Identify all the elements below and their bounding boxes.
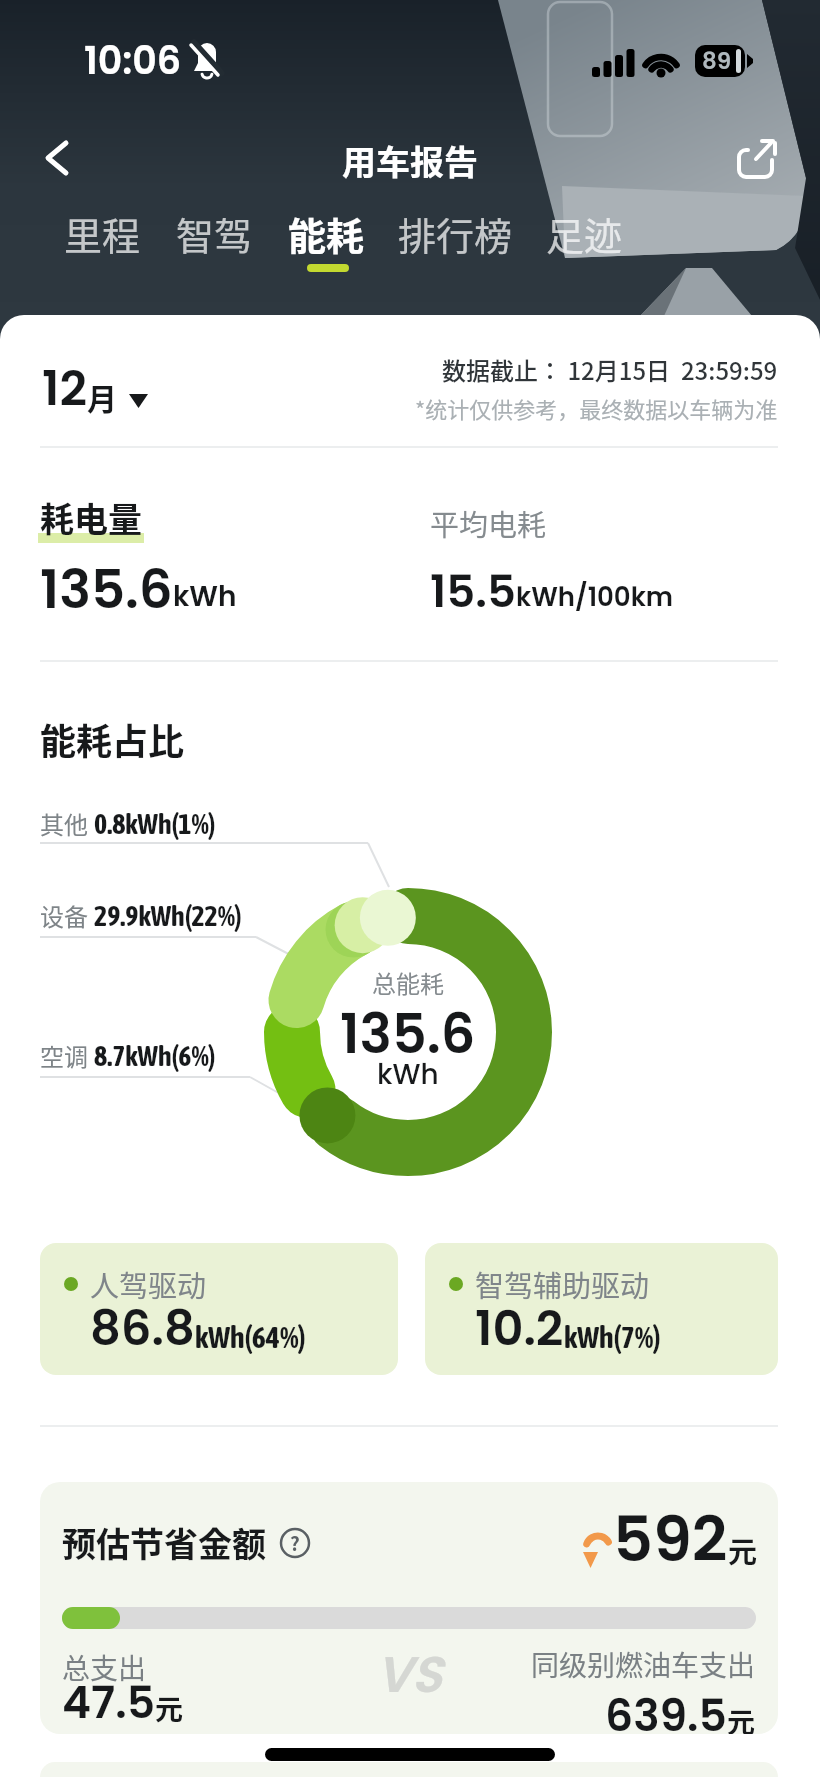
staticText: 元 bbox=[727, 1701, 756, 1734]
staticText: 智驾辅助驱动 bbox=[475, 1263, 650, 1305]
button[interactable]: 能耗 bbox=[288, 206, 365, 261]
staticText: 排行榜 bbox=[398, 206, 513, 261]
staticText: kWh bbox=[173, 577, 237, 616]
staticText: 里程 bbox=[64, 206, 141, 261]
staticText: 135.6 bbox=[40, 552, 173, 626]
staticText: 元 bbox=[728, 1529, 758, 1571]
button[interactable] bbox=[36, 132, 84, 180]
staticText: 空调 bbox=[40, 1038, 88, 1073]
staticText: 47.5 bbox=[62, 1672, 155, 1734]
staticText: *统计仅供参考，最终数据以车辆为准 bbox=[415, 392, 778, 424]
button[interactable]: 智驾辅助驱动 bbox=[425, 1243, 778, 1375]
staticText: 人驾驱动 bbox=[90, 1263, 207, 1305]
staticText: 元 bbox=[155, 1688, 184, 1729]
staticText: 耗电量 bbox=[40, 493, 142, 542]
staticText: 10.2 bbox=[475, 1295, 564, 1362]
button[interactable]: 排行榜 bbox=[398, 206, 513, 261]
button[interactable]: 里程 bbox=[64, 206, 141, 261]
staticText: 预估节省金额 bbox=[62, 1518, 266, 1567]
staticText: 135.6 bbox=[340, 996, 476, 1072]
staticText: VS bbox=[376, 1640, 442, 1710]
staticText: 总能耗 bbox=[372, 965, 444, 1000]
staticText: 平均电耗 bbox=[430, 502, 547, 544]
button[interactable]: 足迹 bbox=[546, 206, 623, 261]
staticText: 能耗占比 bbox=[40, 713, 185, 765]
staticText: 智驾 bbox=[176, 206, 253, 261]
staticText: 月 bbox=[87, 375, 117, 418]
staticText: 8.7kWh(6%) bbox=[94, 1040, 216, 1072]
staticText: kWh(64%) bbox=[195, 1320, 306, 1354]
staticText: 12 bbox=[42, 355, 87, 422]
staticText: kWh/100km bbox=[516, 579, 674, 615]
staticText: 29.9kWh(22%) bbox=[94, 900, 242, 932]
staticText: 0.8kWh(1%) bbox=[94, 808, 216, 840]
staticText: 设备 bbox=[40, 898, 88, 933]
button[interactable]: ? bbox=[279, 1527, 311, 1559]
staticText: 其他 bbox=[40, 806, 88, 841]
staticText: 86.8 bbox=[90, 1295, 195, 1362]
staticText: 同级别燃油车支出 bbox=[531, 1644, 756, 1685]
staticText: ? bbox=[290, 1529, 300, 1557]
staticText: 639.5 bbox=[605, 1685, 727, 1734]
staticText: 能耗 bbox=[288, 206, 365, 261]
staticText: 数据截止： 12月15日 23:59:59 bbox=[442, 352, 778, 387]
staticText: kWh bbox=[377, 1055, 439, 1094]
staticText: 总支出 bbox=[62, 1647, 147, 1688]
staticText: 89 bbox=[702, 45, 732, 77]
staticText: 592 bbox=[613, 1496, 728, 1583]
button[interactable]: 12 bbox=[42, 355, 148, 422]
staticText: 用车报告 bbox=[342, 136, 478, 185]
button[interactable] bbox=[728, 130, 784, 186]
staticText: kWh(7%) bbox=[564, 1320, 661, 1354]
staticText: 10:06 bbox=[84, 34, 182, 87]
button[interactable]: 人驾驱动 bbox=[40, 1243, 398, 1375]
staticText: 足迹 bbox=[546, 206, 623, 261]
button[interactable]: 预估节省金额 bbox=[40, 1482, 778, 1734]
button[interactable]: 智驾 bbox=[176, 206, 253, 261]
staticText: 15.5 bbox=[430, 560, 516, 623]
